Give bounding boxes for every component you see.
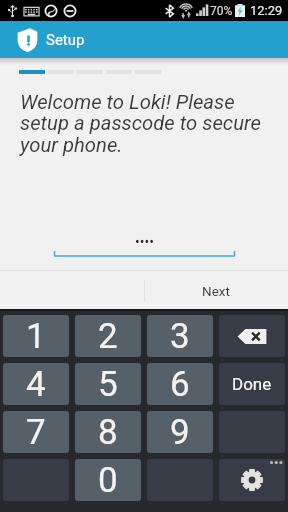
staticText: Done [232, 374, 272, 394]
button[interactable]: Backspace [219, 315, 285, 357]
staticText: 2 [98, 316, 118, 357]
staticText: 12:29 [250, 3, 283, 18]
staticText: 5 [98, 364, 118, 405]
staticText: 70% [210, 4, 233, 18]
staticText: 8 [98, 412, 118, 453]
button[interactable]: 8 [75, 411, 141, 453]
button[interactable]: Next [144, 271, 288, 310]
staticText: •••• [135, 234, 154, 250]
button[interactable]: 4 [3, 363, 69, 405]
button[interactable]: Settings [219, 459, 285, 501]
button[interactable]: 6 [147, 363, 213, 405]
button[interactable]: 0 [75, 459, 141, 501]
staticText: Next [202, 283, 230, 299]
staticText: 4 [26, 364, 46, 405]
staticText: 0 [98, 460, 118, 501]
staticText: Setup [46, 31, 85, 49]
button[interactable]: 9 [147, 411, 213, 453]
button[interactable]: 3 [147, 315, 213, 357]
button[interactable]: Done [219, 363, 285, 405]
staticText: 6 [170, 364, 190, 405]
button[interactable]: 1 [3, 315, 69, 357]
button[interactable]: 2 [75, 315, 141, 357]
button[interactable]: 5 [75, 363, 141, 405]
button[interactable]: 7 [3, 411, 69, 453]
staticText: 7 [26, 412, 46, 453]
staticText: Welcome to Loki! Please setup a passcode… [20, 90, 266, 157]
staticText: 9 [170, 412, 190, 453]
staticText: 3 [170, 316, 190, 357]
staticText: 1 [26, 316, 46, 357]
